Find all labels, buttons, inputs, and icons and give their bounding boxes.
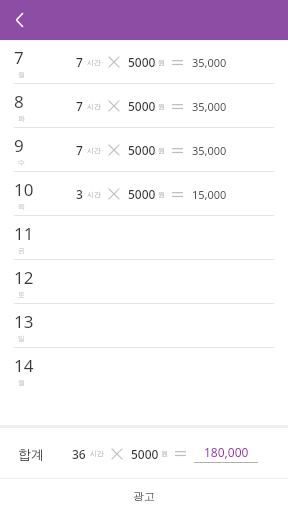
staticText: 원 (158, 102, 165, 111)
staticText: 시간 (90, 449, 104, 458)
staticText: 원 (158, 58, 165, 67)
staticText: 일 (18, 334, 25, 343)
staticText: 13 (14, 310, 34, 333)
staticText: 금 (18, 246, 25, 255)
staticText: 5000 (128, 54, 156, 70)
staticText: 5000 (131, 446, 159, 462)
staticText: 8 (14, 90, 24, 113)
staticText: 토 (18, 290, 25, 299)
staticText: 시간 (87, 146, 101, 155)
staticText: 원 (161, 449, 168, 458)
button[interactable]: 12 (0, 260, 288, 304)
staticText: 15,000 (192, 187, 227, 202)
staticText: 합계 (18, 446, 44, 462)
staticText: 180,000 (204, 444, 249, 460)
button[interactable]: 8 (0, 84, 288, 128)
staticText: 원 (158, 146, 165, 155)
staticText: 5000 (128, 98, 156, 114)
staticText: 5000 (128, 186, 156, 202)
staticText: 7 (76, 98, 83, 114)
button[interactable]: 합계 (0, 427, 288, 479)
staticText: 7 (76, 142, 83, 158)
staticText: 수 (18, 158, 25, 167)
button[interactable]: 13 (0, 304, 288, 348)
staticText: 시간 (87, 102, 101, 111)
staticText: 35,000 (192, 55, 227, 70)
staticText: 14 (14, 354, 34, 377)
staticText: 35,000 (192, 99, 227, 114)
staticText: 11 (14, 222, 34, 245)
staticText: 35,000 (192, 143, 227, 158)
staticText: 3 (76, 186, 83, 202)
staticText: 화 (18, 114, 25, 123)
button[interactable]: 14 (0, 348, 288, 392)
button[interactable]: Back (0, 0, 40, 40)
staticText: 12 (14, 266, 34, 289)
staticText: 7 (76, 54, 83, 70)
staticText: 원 (158, 190, 165, 199)
button[interactable]: 10 (0, 172, 288, 216)
staticText: 10 (14, 178, 34, 201)
staticText: 7 (14, 46, 24, 69)
button[interactable]: 광고 (0, 479, 288, 512)
staticText: 9 (14, 134, 24, 157)
staticText: 5000 (128, 142, 156, 158)
staticText: 목 (18, 202, 25, 211)
staticText: 시간 (87, 58, 101, 67)
button[interactable]: 11 (0, 216, 288, 260)
staticText: 36 (72, 446, 86, 462)
button[interactable]: 9 (0, 128, 288, 172)
staticText: 월 (18, 378, 25, 387)
staticText: 월 (18, 70, 25, 79)
staticText: 광고 (133, 489, 155, 503)
staticText: 시간 (87, 190, 101, 199)
button[interactable]: 7 (0, 40, 288, 84)
